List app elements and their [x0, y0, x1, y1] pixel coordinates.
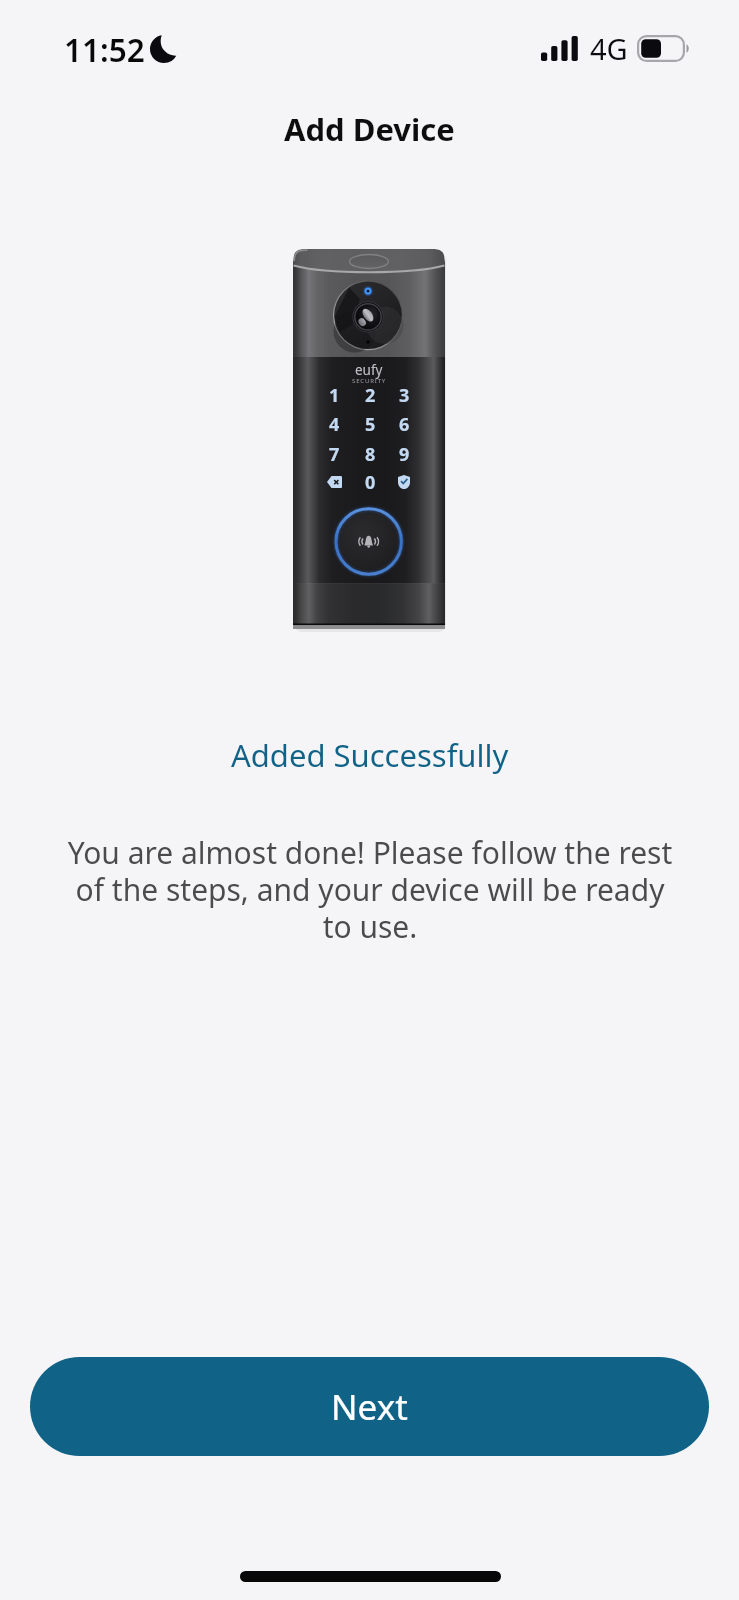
staticText: 4 — [329, 412, 340, 437]
staticText: 7 — [329, 442, 340, 467]
staticText: 9 — [399, 442, 410, 467]
staticText: Added Successfully — [231, 734, 509, 776]
staticText: 3 — [399, 383, 410, 408]
staticText: 1 — [329, 383, 340, 408]
staticText: Next — [331, 1383, 408, 1431]
staticText: 2 — [365, 383, 376, 408]
other: Do not disturb — [150, 35, 178, 63]
button[interactable]: Next — [30, 1357, 709, 1456]
staticText: 8 — [365, 442, 376, 467]
staticText: Add Device — [284, 108, 455, 150]
other: Delete — [327, 476, 342, 488]
staticText: 4G — [590, 29, 628, 68]
staticText: 5 — [365, 412, 376, 437]
staticText: 11:52 — [64, 28, 145, 71]
staticText: 0 — [365, 470, 376, 495]
other: Battery — [637, 35, 692, 62]
staticText: You are almost done! Please follow the r… — [63, 832, 677, 947]
other: Lock — [398, 475, 410, 489]
staticText: 6 — [399, 412, 410, 437]
staticText: SECURITY — [352, 377, 387, 385]
staticText: eufy — [355, 361, 383, 379]
